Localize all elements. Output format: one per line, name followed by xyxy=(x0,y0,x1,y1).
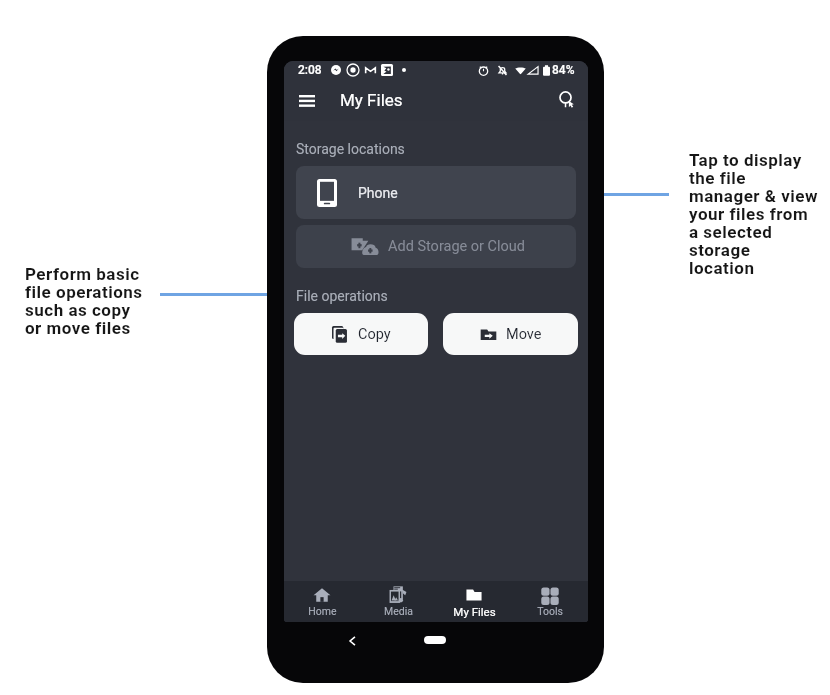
button[interactable]: Phone xyxy=(296,166,576,219)
staticText: Copy xyxy=(358,326,391,343)
button[interactable]: Tools xyxy=(512,581,588,622)
staticText: Add Storage or Cloud xyxy=(388,238,526,255)
button[interactable]: My Files xyxy=(436,581,512,622)
staticText: Perform basic file operations such as co… xyxy=(25,264,143,338)
staticText: Phone xyxy=(358,185,398,201)
button[interactable]: Search xyxy=(554,88,578,112)
staticText: Tap to display the file manager & view y… xyxy=(689,150,818,278)
button[interactable]: Home xyxy=(284,581,360,622)
button[interactable]: Menu xyxy=(295,88,319,112)
staticText: Tools xyxy=(537,605,563,617)
button[interactable]: Move xyxy=(443,313,578,355)
staticText: Storage locations xyxy=(296,141,405,157)
button[interactable]: Copy xyxy=(294,313,428,355)
staticText: 84% xyxy=(552,63,575,77)
staticText: My Files xyxy=(453,605,496,618)
button[interactable]: Home xyxy=(424,636,446,644)
staticText: File operations xyxy=(296,288,388,304)
staticText: Move xyxy=(506,326,542,343)
button[interactable]: Back xyxy=(342,631,360,649)
button[interactable]: Add Storage or Cloud xyxy=(296,225,576,268)
staticText: My Files xyxy=(340,90,403,110)
staticText: 2:08 xyxy=(298,63,322,77)
staticText: Media xyxy=(384,605,413,617)
staticText: Home xyxy=(308,605,337,617)
button[interactable]: Media xyxy=(360,581,436,622)
